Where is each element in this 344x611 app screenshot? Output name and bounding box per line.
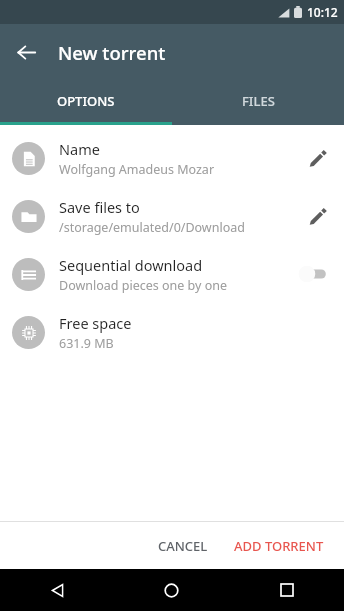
button[interactable]: Sequential download toggle: [290, 255, 338, 293]
staticText: Download pieces one by one: [59, 277, 227, 294]
button[interactable]: Back: [0, 569, 114, 611]
button[interactable]: Sequential download: [0, 245, 344, 303]
button[interactable]: Back: [6, 32, 46, 72]
staticText: Sequential download: [59, 255, 203, 275]
button[interactable]: Home: [114, 569, 229, 611]
button[interactable]: Name: [0, 129, 344, 187]
staticText: Free space: [59, 313, 132, 333]
staticText: OPTIONS: [57, 92, 115, 110]
staticText: /storage/emulated/0/Download: [59, 219, 245, 236]
button[interactable]: CANCEL: [146, 529, 220, 563]
button[interactable]: OPTIONS: [0, 80, 172, 122]
staticText: ADD TORRENT: [234, 537, 324, 555]
button[interactable]: ADD TORRENT: [224, 529, 334, 563]
button[interactable]: Edit: [298, 138, 338, 178]
staticText: Name: [59, 139, 100, 159]
button[interactable]: Recent apps: [229, 569, 344, 611]
staticText: Wolfgang Amadeus Mozar: [59, 161, 215, 178]
button[interactable]: Save files to: [0, 187, 344, 245]
staticText: New torrent: [58, 40, 166, 65]
staticText: 631.9 MB: [59, 335, 114, 352]
staticText: CANCEL: [158, 537, 208, 555]
button[interactable]: Edit: [298, 196, 338, 236]
staticText: Save files to: [59, 197, 140, 217]
button[interactable]: FILES: [172, 80, 344, 122]
button[interactable]: Free space: [0, 303, 344, 361]
staticText: 10:12: [307, 4, 338, 20]
staticText: FILES: [242, 92, 275, 110]
